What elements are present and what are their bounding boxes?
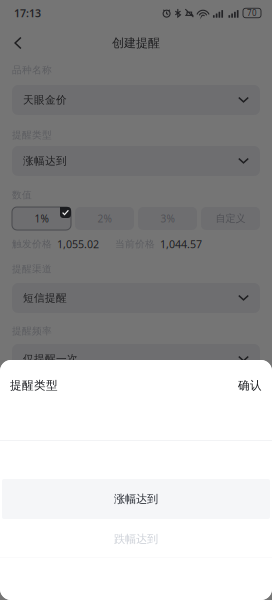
staticText: 品种名称	[12, 64, 52, 76]
staticText: 3%	[160, 212, 174, 225]
staticText: 涨幅达到	[114, 492, 158, 506]
button[interactable]: 涨幅达到	[0, 479, 272, 519]
button[interactable]: 涨幅达到	[12, 146, 260, 176]
staticText: 触发价格	[12, 238, 52, 250]
staticText: 提醒类型	[10, 378, 58, 393]
staticText: 提醒频率	[12, 325, 52, 337]
staticText: 确认	[238, 378, 262, 393]
staticText: 17:13	[14, 6, 41, 20]
staticText: 提醒类型	[12, 129, 52, 141]
staticText: 仅提醒一次	[23, 352, 78, 366]
button[interactable]: 天眼金价	[12, 85, 260, 115]
button[interactable]: Back	[4, 30, 32, 56]
staticText: 天眼金价	[23, 93, 67, 107]
staticText: 短信提醒	[23, 291, 67, 305]
button[interactable]: 仅提醒一次	[12, 344, 260, 374]
staticText: 当前价格	[115, 238, 155, 250]
button[interactable]: 3%	[138, 207, 197, 230]
staticText: 1,055.02	[57, 237, 99, 251]
button[interactable]: 自定义	[201, 207, 260, 230]
button[interactable]: 跌幅达到	[0, 519, 272, 559]
staticText: 自定义	[215, 212, 245, 225]
staticText: 创建提醒	[112, 35, 160, 50]
staticText: 涨幅达到	[23, 154, 67, 168]
button[interactable]: 1%	[12, 207, 71, 230]
staticText: 70	[247, 8, 257, 18]
staticText: 1,044.57	[160, 237, 202, 251]
staticText: 1%	[34, 212, 48, 225]
staticText: 提醒渠道	[12, 263, 52, 275]
button[interactable]: 确认	[220, 369, 262, 402]
staticText: 跌幅达到	[114, 532, 158, 546]
staticText: 2%	[97, 212, 111, 225]
staticText: 数值	[12, 189, 32, 201]
button[interactable]: 短信提醒	[12, 283, 260, 313]
button[interactable]: 2%	[75, 207, 134, 230]
